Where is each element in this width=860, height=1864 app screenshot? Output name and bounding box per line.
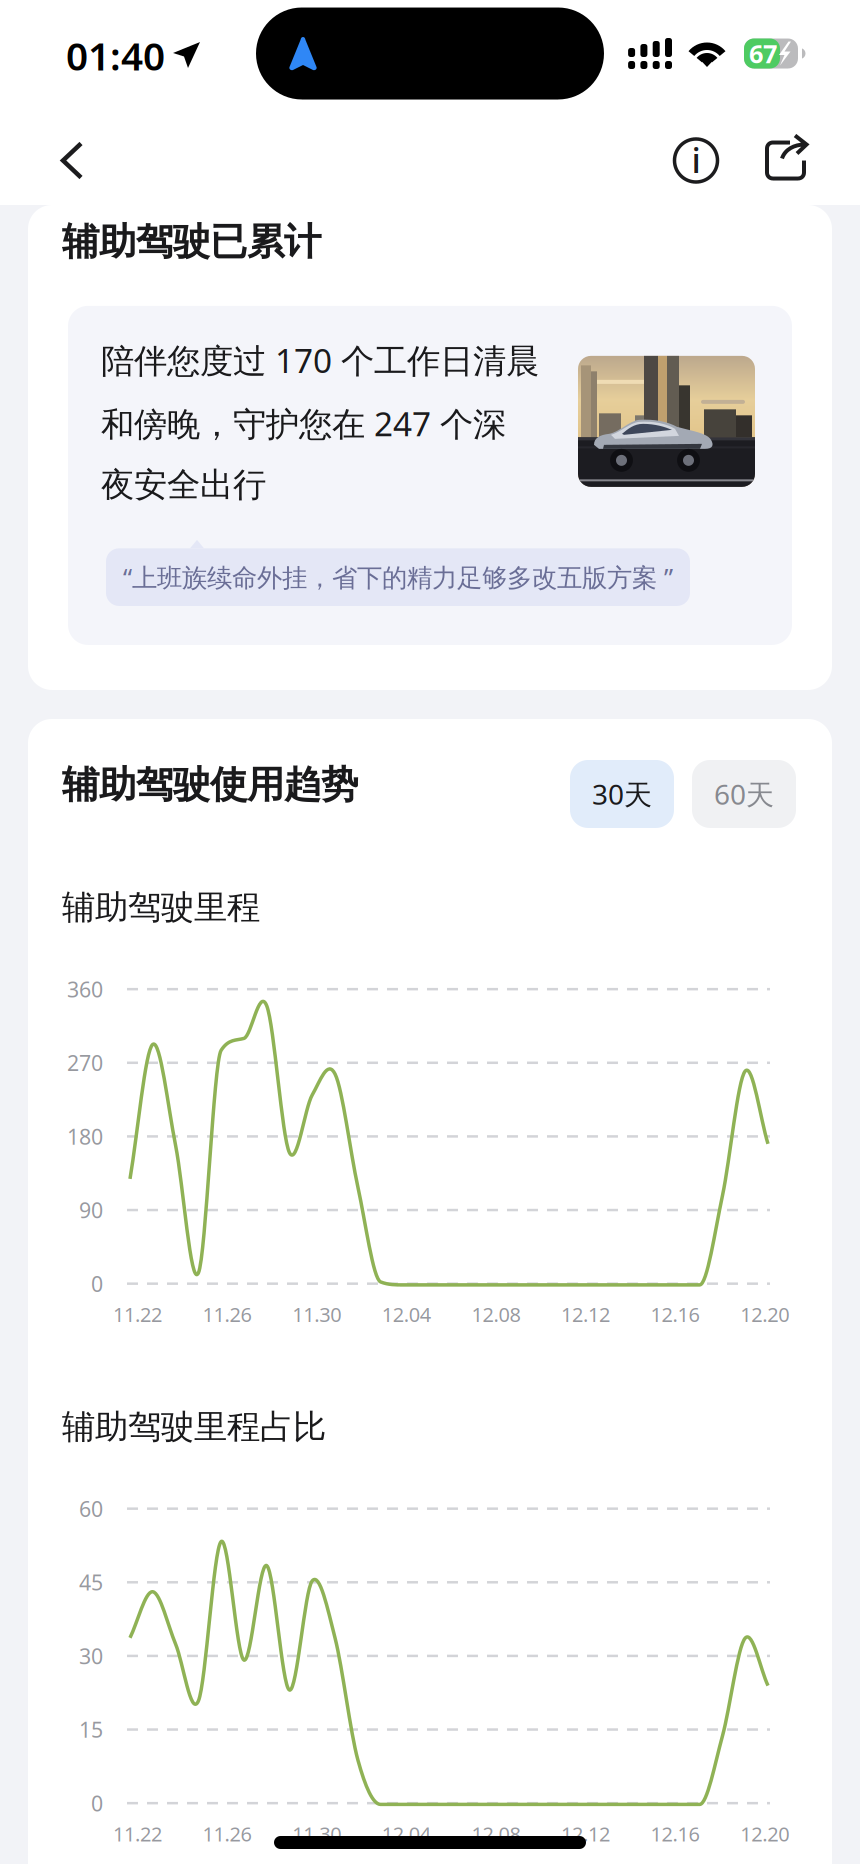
staticText: 30天 (592, 775, 652, 813)
staticText: 12.04 (382, 1301, 431, 1327)
staticText: 45 (79, 1568, 103, 1596)
button[interactable]: Information (658, 120, 748, 200)
staticText: 0 (91, 1269, 103, 1298)
staticText: 11.26 (203, 1820, 252, 1847)
staticText: 60天 (714, 775, 774, 813)
staticText: 180 (67, 1122, 103, 1150)
staticText: 11.22 (113, 1820, 162, 1847)
staticText: 360 (67, 975, 103, 1003)
staticText: 12.16 (651, 1820, 700, 1847)
staticText: 11.26 (203, 1301, 252, 1327)
staticText: 30 (79, 1642, 103, 1670)
button[interactable]: 30天 (570, 760, 674, 828)
staticText: 12.08 (471, 1301, 520, 1327)
staticText: 陪伴您度过 170 个工作日清晨 (101, 338, 539, 382)
staticText: 辅助驾驶里程占比 (62, 1406, 326, 1447)
staticText: 12.20 (740, 1820, 789, 1847)
staticText: “上班族续命外挂，省下的精力足够多改五版方案 ” (123, 560, 673, 594)
staticText: 0 (91, 1789, 103, 1817)
staticText: 15 (79, 1715, 103, 1744)
staticText: 辅助驾驶使用趋势 (62, 762, 358, 808)
staticText: 90 (79, 1196, 103, 1224)
staticText: i (691, 136, 700, 182)
staticText: 67 (749, 37, 777, 70)
staticText: 辅助驾驶里程 (62, 887, 260, 928)
staticText: 12.08 (471, 1820, 520, 1847)
button[interactable]: Share (748, 120, 824, 200)
staticText: 12.20 (740, 1301, 789, 1327)
staticText: 60 (79, 1494, 103, 1523)
staticText: 12.16 (651, 1301, 700, 1327)
staticText: 夜安全出行 (101, 464, 266, 505)
staticText: 辅助驾驶已累计 (62, 219, 321, 265)
staticText: 12.04 (382, 1820, 431, 1847)
button[interactable]: 60天 (692, 760, 796, 828)
staticText: 和傍晚，守护您在 247 个深 (101, 401, 506, 445)
staticText: 01:40 (66, 30, 165, 81)
staticText: 11.30 (292, 1820, 341, 1847)
staticText: 270 (67, 1049, 103, 1077)
staticText: 11.30 (292, 1301, 341, 1327)
staticText: 12.12 (561, 1820, 610, 1847)
staticText: 12.12 (561, 1301, 610, 1327)
button[interactable]: Back (38, 122, 106, 198)
staticText: 11.22 (113, 1301, 162, 1327)
